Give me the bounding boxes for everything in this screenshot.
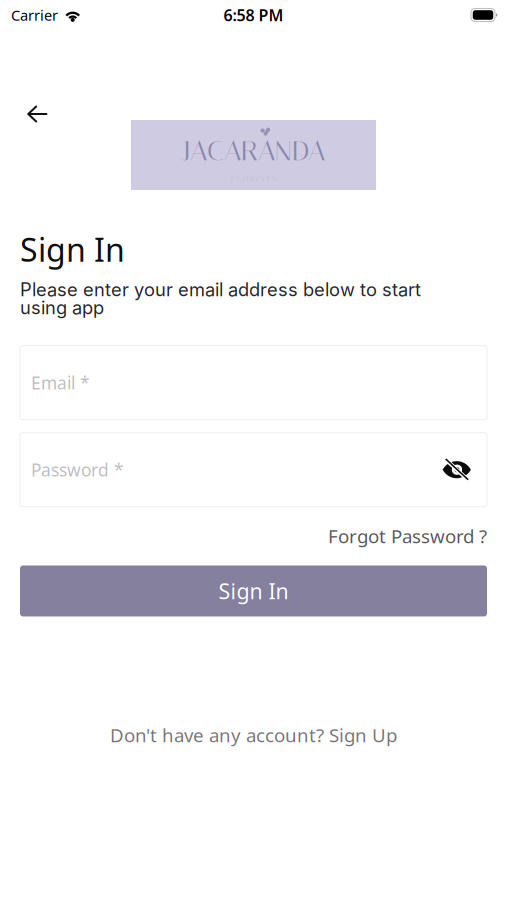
staticText: 6:58 PM xyxy=(223,4,283,26)
staticText: using app xyxy=(20,297,104,319)
button[interactable]: Show password xyxy=(442,459,472,481)
button[interactable]: Email * xyxy=(20,346,487,420)
staticText: Please enter your email address below to… xyxy=(20,278,421,301)
staticText: Don't have any account? Sign Up xyxy=(110,722,397,747)
button[interactable]: Password * xyxy=(20,433,442,507)
staticText: Forgot Password ? xyxy=(328,524,487,548)
button[interactable]: Back xyxy=(15,92,59,136)
staticText: Sign In xyxy=(218,577,288,605)
button[interactable]: Don't have any account? Sign Up xyxy=(94,714,413,755)
button[interactable]: Sign In xyxy=(20,565,487,616)
staticText: JACARANDA xyxy=(182,134,325,167)
staticText: Carrier xyxy=(11,5,58,25)
staticText: Password * xyxy=(31,458,124,481)
button[interactable]: Forgot Password ? xyxy=(328,518,487,554)
staticText: Email * xyxy=(31,371,90,394)
staticText: Sign In xyxy=(20,228,125,270)
